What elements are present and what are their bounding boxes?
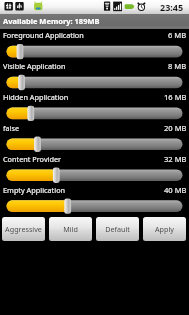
- staticText: Default: [105, 224, 130, 234]
- button[interactable]: false: [0, 123, 189, 154]
- staticText: Empty Application: [3, 185, 66, 195]
- button[interactable]: Empty Application: [0, 185, 189, 216]
- button[interactable]: Default: [96, 217, 139, 241]
- staticText: Content Provider: [3, 154, 62, 164]
- staticText: 16 MB: [164, 92, 187, 102]
- staticText: Hidden Application: [3, 92, 69, 102]
- staticText: 40 MB: [164, 185, 187, 195]
- staticText: 8 MB: [168, 61, 187, 71]
- staticText: Visible Application: [3, 61, 66, 71]
- button[interactable]: Mild: [49, 217, 92, 241]
- staticText: Aggressive: [5, 224, 42, 234]
- staticText: false: [3, 123, 20, 133]
- staticText: 6 MB: [168, 30, 187, 40]
- button[interactable]: Foreground Application: [0, 30, 189, 61]
- button[interactable]: Hidden Application: [0, 92, 189, 123]
- button[interactable]: Apply: [143, 217, 186, 241]
- button[interactable]: Visible Application: [0, 61, 189, 92]
- staticText: 20 MB: [164, 123, 187, 133]
- button[interactable]: Aggressive: [2, 217, 45, 241]
- staticText: 23:45: [160, 1, 184, 13]
- staticText: 32 MB: [164, 154, 187, 164]
- staticText: Foreground Application: [3, 30, 84, 40]
- staticText: Available Memory: 189MB: [3, 16, 100, 26]
- button[interactable]: Content Provider: [0, 154, 189, 185]
- staticText: Apply: [155, 224, 174, 234]
- staticText: Mild: [63, 224, 78, 234]
